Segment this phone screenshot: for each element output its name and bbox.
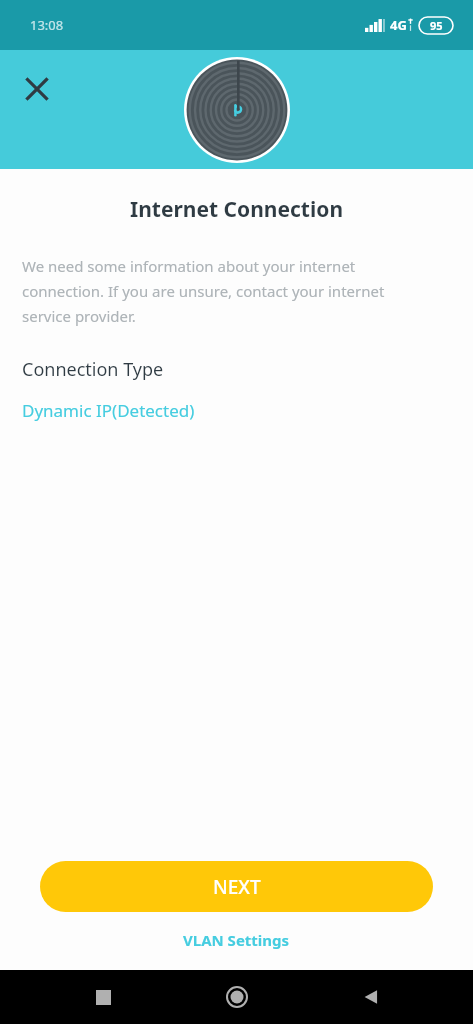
staticText: 95 bbox=[430, 18, 443, 33]
staticText: NEXT bbox=[213, 874, 261, 900]
staticText: VLAN Settings bbox=[183, 930, 290, 950]
button[interactable]: Close bbox=[17, 69, 57, 109]
button[interactable]: Recent apps bbox=[79, 973, 127, 1021]
staticText: 13:08 bbox=[30, 16, 64, 34]
button[interactable]: VLAN Settings bbox=[171, 925, 302, 955]
staticText: Connection Type bbox=[22, 357, 164, 382]
staticText: 4G bbox=[390, 16, 407, 34]
button[interactable]: Home bbox=[213, 973, 261, 1021]
button[interactable]: Back bbox=[347, 973, 395, 1021]
button[interactable]: NEXT bbox=[40, 861, 433, 912]
button[interactable]: Dynamic IP(Detected) bbox=[0, 397, 473, 426]
staticText: We need some information about your inte… bbox=[22, 256, 437, 326]
staticText: Internet Connection bbox=[0, 195, 473, 224]
staticText: Dynamic IP(Detected) bbox=[22, 399, 195, 422]
